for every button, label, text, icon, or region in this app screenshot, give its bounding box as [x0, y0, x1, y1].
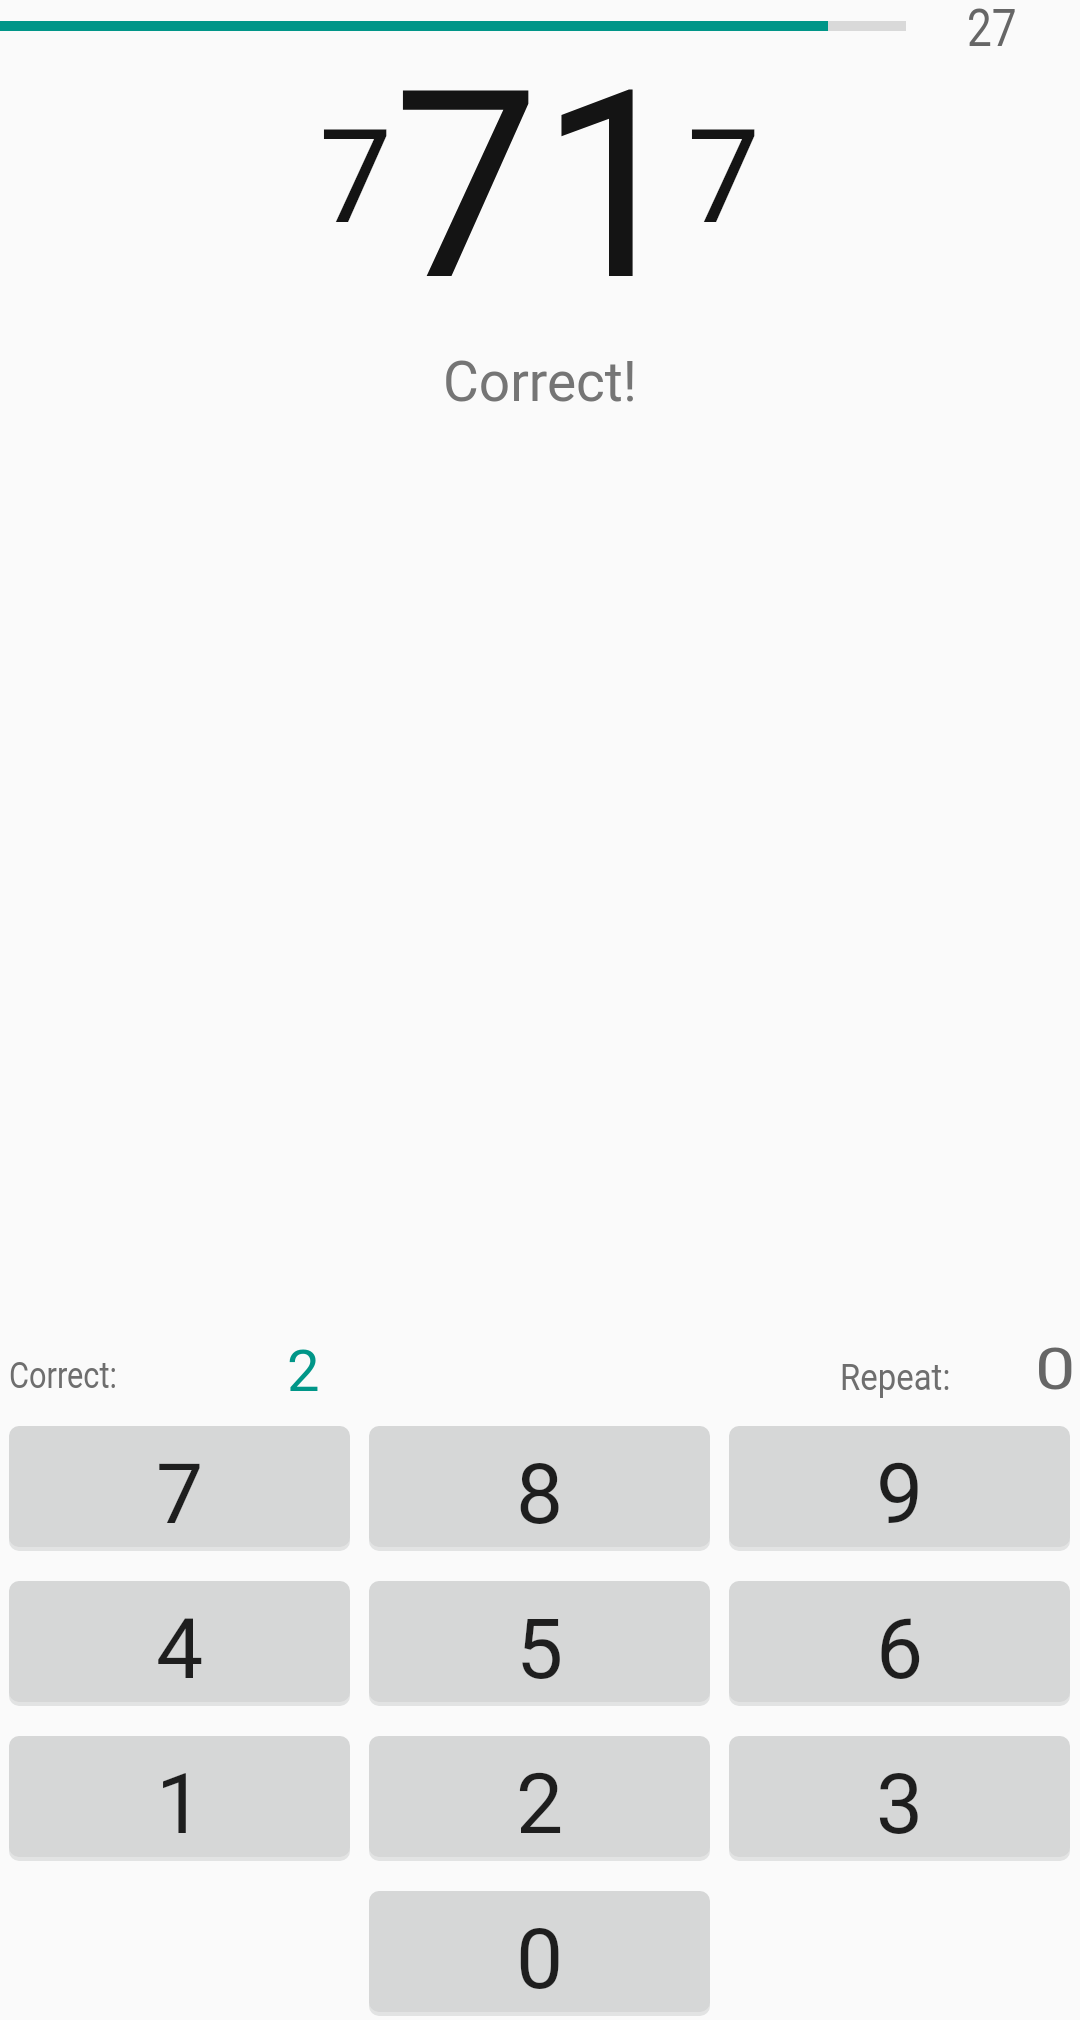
staticText: 3 [876, 1755, 924, 1853]
button[interactable]: 3 [729, 1736, 1070, 1857]
staticText: 1 [156, 1755, 204, 1853]
staticText: 5 [516, 1600, 564, 1698]
staticText: 7 [156, 1445, 204, 1543]
staticText: 71 [393, 34, 687, 340]
staticText: 27 [967, 0, 1017, 59]
staticText: 7 [319, 101, 393, 253]
staticText: Repeat: [840, 1356, 951, 1399]
staticText: 6 [876, 1600, 924, 1698]
button[interactable]: 6 [729, 1581, 1070, 1702]
button[interactable]: 2 [369, 1736, 710, 1857]
button[interactable]: 1 [9, 1736, 350, 1857]
button[interactable]: 4 [9, 1581, 350, 1702]
staticText: Correct! [0, 350, 1080, 414]
staticText: 0 [1035, 1335, 1076, 1403]
button[interactable]: 8 [369, 1426, 710, 1547]
button[interactable]: 0 [369, 1891, 710, 2012]
button[interactable]: 5 [369, 1581, 710, 1702]
staticText: 2 [287, 1337, 320, 1405]
staticText: 7 [687, 101, 761, 253]
staticText: 4 [156, 1600, 204, 1698]
staticText: 8 [516, 1445, 564, 1543]
staticText: 9 [876, 1445, 924, 1543]
button[interactable]: 7 [9, 1426, 350, 1547]
staticText: 2 [516, 1755, 564, 1853]
button[interactable]: 9 [729, 1426, 1070, 1547]
staticText: 0 [516, 1910, 564, 2008]
staticText: Correct: [9, 1354, 117, 1397]
